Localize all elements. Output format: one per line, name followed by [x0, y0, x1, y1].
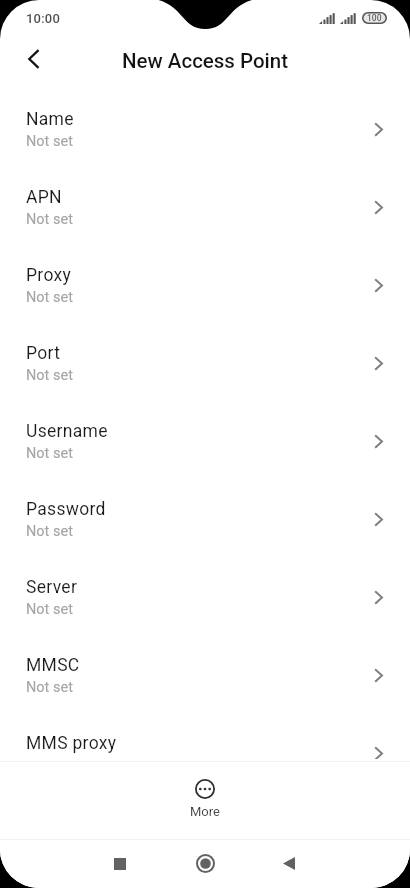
staticText: More [190, 804, 220, 819]
staticText: Username [26, 421, 108, 442]
staticText: Port [26, 343, 61, 364]
staticText: Not set [26, 367, 73, 384]
staticText: Not set [26, 601, 73, 618]
button[interactable]: Back [10, 36, 56, 82]
staticText: Password [26, 499, 106, 520]
staticText: MMS proxy [26, 733, 117, 754]
staticText: Not set [26, 133, 73, 150]
staticText: Not set [26, 679, 73, 696]
staticText: Server [26, 577, 78, 598]
staticText: Not set [26, 445, 73, 462]
button[interactable]: Name [0, 90, 410, 168]
staticText: Proxy [26, 265, 72, 286]
staticText: MMSC [26, 655, 80, 676]
button[interactable]: Home [179, 839, 231, 888]
staticText: New Access Point [122, 49, 289, 73]
staticText: 10:00 [26, 11, 60, 26]
button[interactable]: MMS proxy [0, 714, 410, 759]
button[interactable]: Username [0, 402, 410, 480]
staticText: Not set [26, 211, 73, 228]
button[interactable]: Password [0, 480, 410, 558]
button[interactable]: MMSC [0, 636, 410, 714]
staticText: Name [26, 109, 74, 130]
button[interactable]: Proxy [0, 246, 410, 324]
staticText: APN [26, 187, 62, 208]
staticText: 100 [367, 13, 382, 23]
button[interactable]: Port [0, 324, 410, 402]
staticText: Not set [26, 289, 73, 306]
button[interactable]: Recents [94, 839, 146, 888]
button[interactable]: Back [263, 839, 315, 888]
button[interactable]: APN [0, 168, 410, 246]
button[interactable]: Server [0, 558, 410, 636]
button[interactable]: More [190, 779, 220, 819]
staticText: Not set [26, 523, 73, 540]
